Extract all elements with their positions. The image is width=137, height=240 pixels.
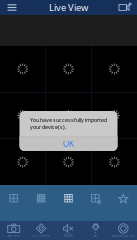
- button[interactable]: Recordings: [113, 0, 137, 15]
- button[interactable]: PTZ CONTROL: [27, 221, 55, 240]
- staticText: PTZ CONTROL: [32, 234, 50, 237]
- staticText: MANUAL RECORD: [112, 234, 135, 237]
- staticText: SNAPSHOT: [7, 234, 20, 237]
- button[interactable]: Camera channel: [46, 92, 91, 138]
- button[interactable]: Camera channel: [92, 92, 137, 138]
- button[interactable]: Camera channel: [92, 46, 137, 92]
- staticText: OK: [63, 138, 74, 149]
- button[interactable]: Camera channel: [0, 139, 45, 185]
- staticText: Live View: [49, 1, 88, 14]
- button[interactable]: Menu: [0, 0, 24, 15]
- button[interactable]: MIC: [82, 221, 110, 240]
- button[interactable]: 2 by 2 layout: [0, 185, 27, 221]
- button[interactable]: Camera channel: [0, 46, 45, 92]
- staticText: You have successfully imported your devi…: [30, 116, 107, 131]
- staticText: AUDIO: [64, 234, 73, 237]
- button[interactable]: Camera channel: [0, 92, 45, 138]
- button[interactable]: SNAPSHOT: [0, 221, 27, 240]
- button[interactable]: AUDIO: [55, 221, 82, 240]
- button[interactable]: 3 by 3 layout: [55, 185, 82, 221]
- button[interactable]: Camera channel: [46, 139, 91, 185]
- button[interactable]: MANUAL RECORD: [110, 221, 137, 240]
- button[interactable]: Favorites: [110, 185, 137, 221]
- button[interactable]: Camera channel: [92, 139, 137, 185]
- staticText: MIC: [93, 234, 98, 237]
- button[interactable]: 4 by 4 layout: [27, 185, 55, 221]
- button[interactable]: Camera channel: [46, 46, 91, 92]
- button[interactable]: OK: [19, 136, 117, 151]
- button[interactable]: Custom layout: [82, 185, 110, 221]
